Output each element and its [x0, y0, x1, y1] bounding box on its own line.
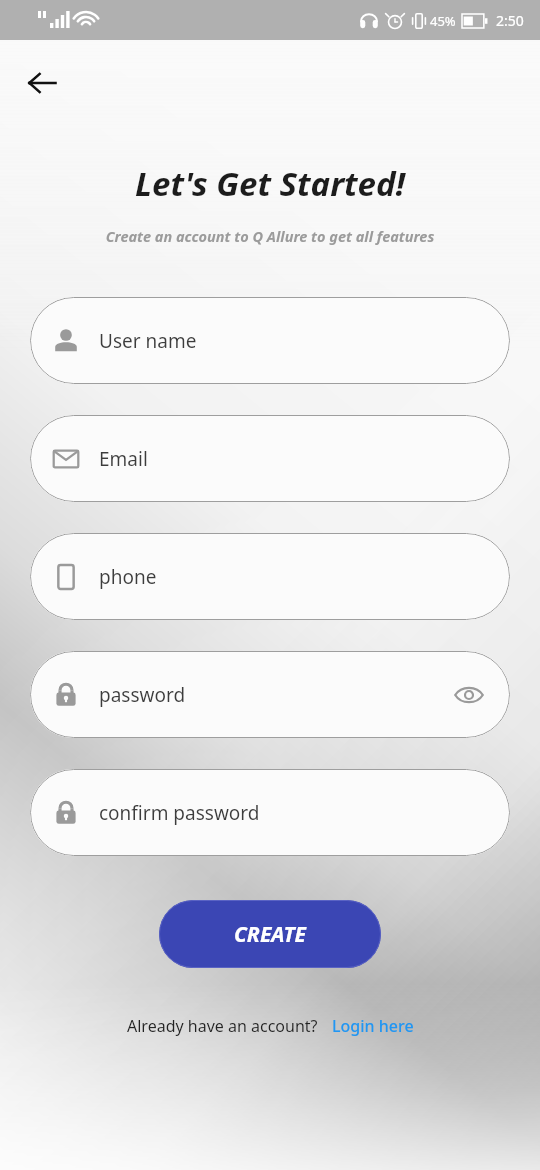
button[interactable]: CREATE	[159, 900, 381, 968]
button[interactable]: Show password	[452, 678, 486, 712]
staticText: Create an account to Q Allure to get all…	[0, 226, 540, 246]
button[interactable]: phone	[30, 533, 510, 620]
button[interactable]: Back	[16, 57, 68, 109]
staticText: 45%	[430, 12, 456, 30]
staticText: Let's Get Started!	[0, 161, 540, 206]
staticText: password	[99, 682, 186, 708]
staticText: CREATE	[234, 920, 307, 949]
staticText: Email	[99, 446, 148, 472]
button[interactable]: password	[30, 651, 510, 738]
staticText: 2:50	[496, 11, 524, 30]
button[interactable]: User name	[30, 297, 510, 384]
button[interactable]: Email	[30, 415, 510, 502]
button[interactable]: Login here	[332, 1015, 414, 1037]
staticText: Login here	[332, 1015, 414, 1037]
staticText: Already have an account?	[127, 1015, 318, 1037]
staticText: phone	[99, 564, 157, 590]
staticText: User name	[99, 328, 197, 354]
staticText: confirm password	[99, 800, 260, 826]
button[interactable]: confirm password	[30, 769, 510, 856]
